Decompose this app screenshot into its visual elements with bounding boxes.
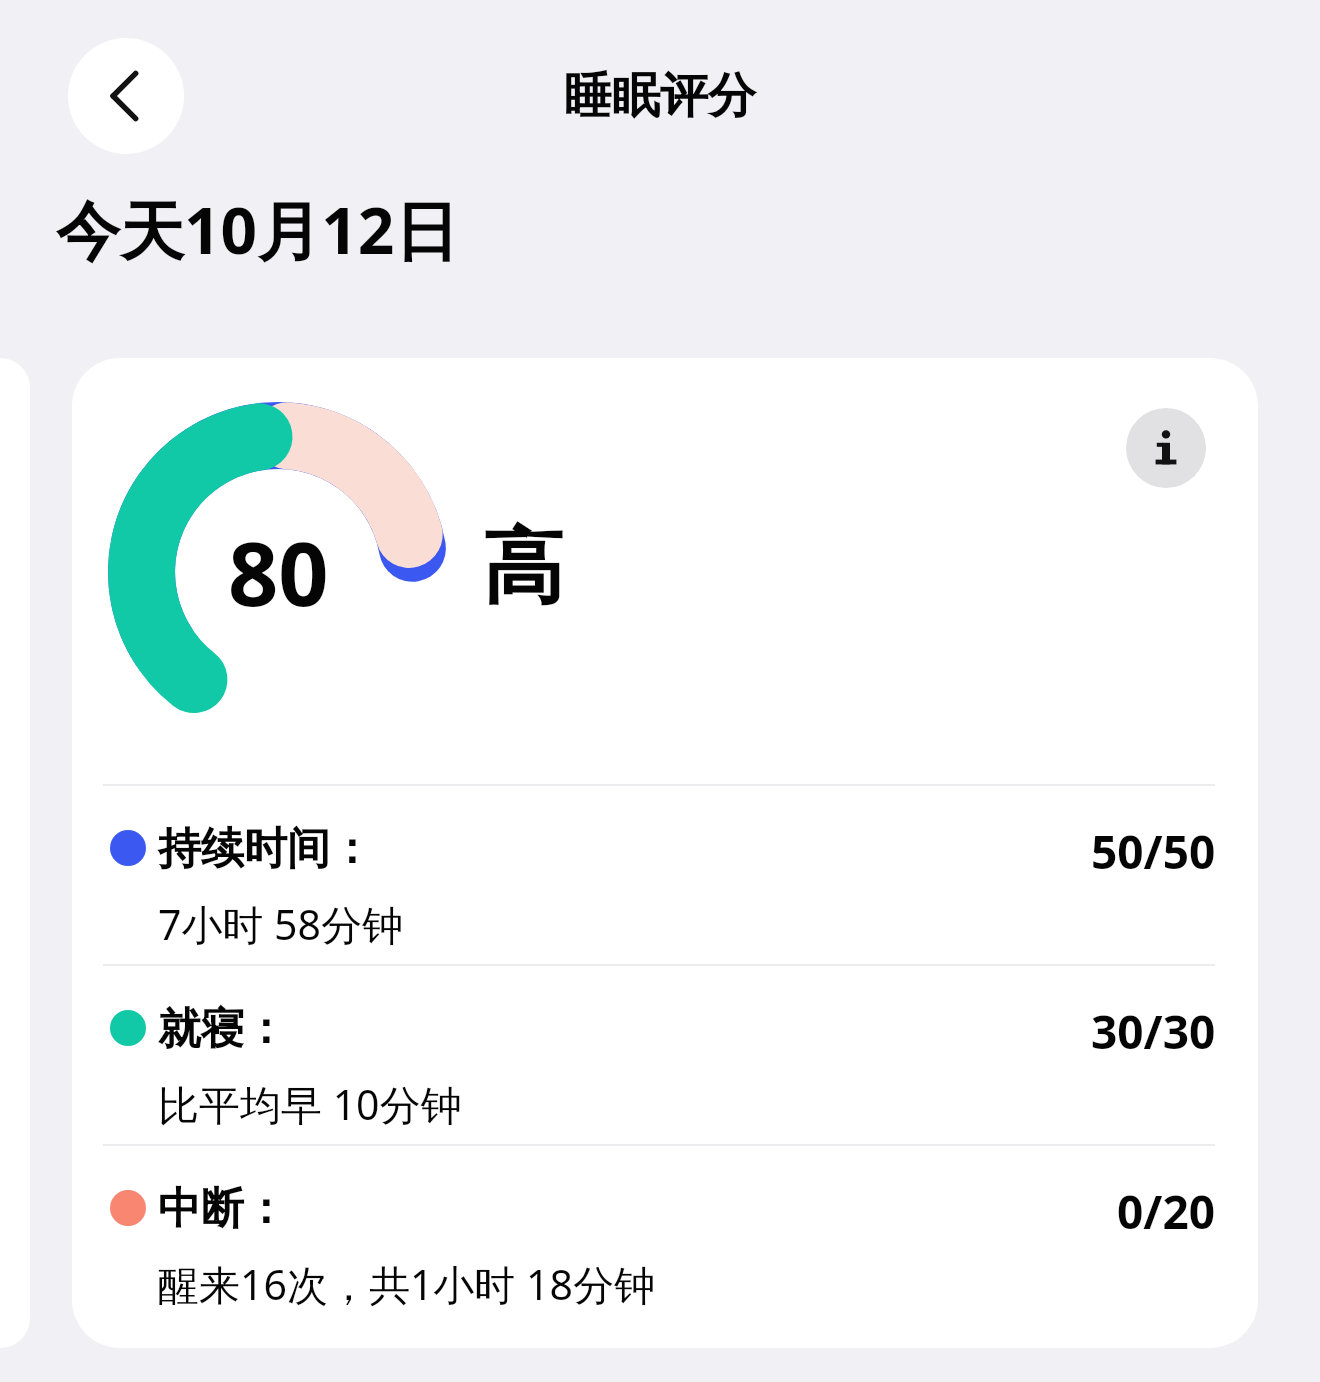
staticText: 30/30 — [1091, 1000, 1216, 1063]
staticText: 7小时 58分钟 — [158, 896, 404, 952]
staticText: 比平均早 10分钟 — [158, 1076, 462, 1132]
button[interactable]: 持续时间： — [72, 784, 1258, 964]
staticText: 持续时间： — [158, 822, 373, 876]
button[interactable]: 就寝： — [72, 964, 1258, 1144]
staticText: 中断： — [158, 1182, 287, 1236]
staticText: 高 — [482, 516, 564, 619]
staticText: 今天10月12日 — [56, 186, 459, 273]
staticText: 睡眠评分 — [564, 66, 756, 126]
staticText: 醒来16次，共1小时 18分钟 — [158, 1256, 655, 1312]
button[interactable]: Back — [68, 38, 184, 154]
staticText: 就寝： — [158, 1002, 287, 1056]
button[interactable]: Info — [1126, 408, 1206, 488]
staticText: 0/20 — [1117, 1180, 1216, 1243]
button[interactable]: 中断： — [72, 1144, 1258, 1324]
staticText: 80 — [228, 512, 329, 632]
staticText: 50/50 — [1091, 820, 1216, 883]
